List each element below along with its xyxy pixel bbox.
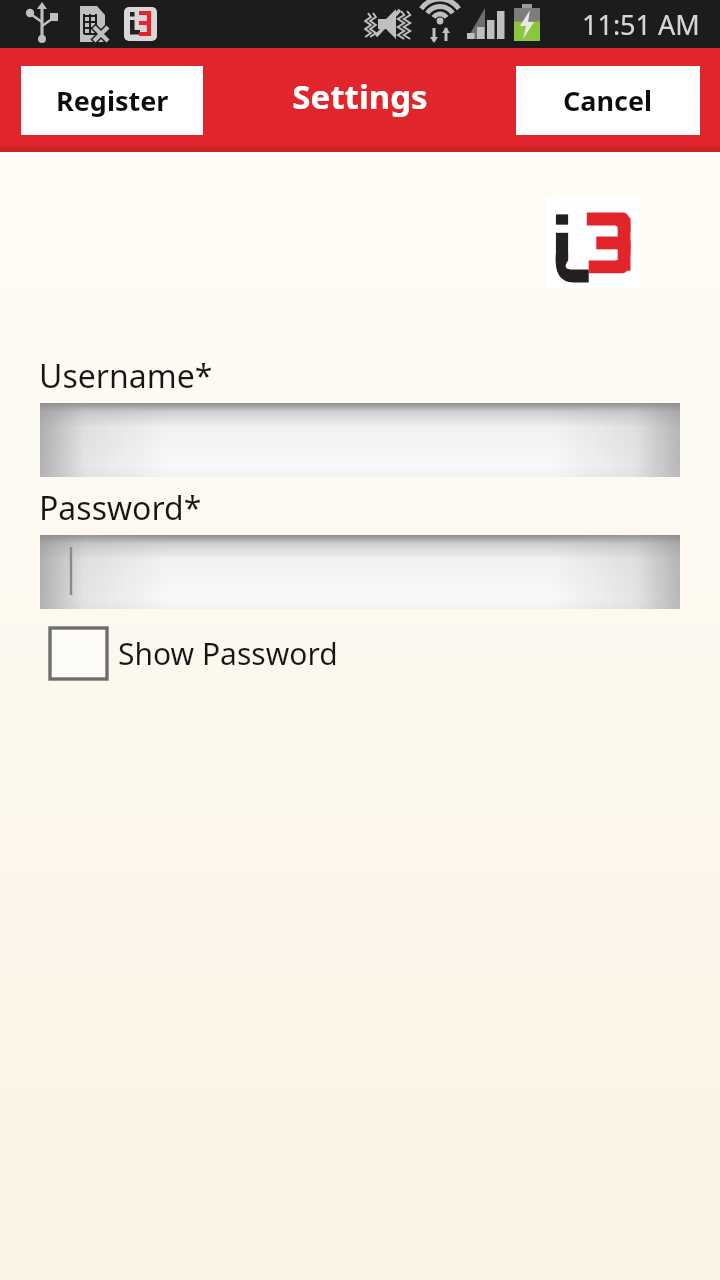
staticText: Settings (292, 74, 428, 119)
button[interactable]: Show Password (50, 625, 338, 681)
button[interactable] (40, 403, 680, 477)
staticText: Show Password (118, 633, 338, 674)
staticText: Cancel (563, 82, 653, 119)
button[interactable]: Cancel (516, 66, 700, 135)
button[interactable]: Register (21, 66, 203, 135)
button[interactable] (40, 535, 680, 609)
other: i3 logo (545, 196, 640, 288)
staticText: Register (56, 82, 169, 119)
staticText: Password* (39, 486, 202, 530)
staticText: Username* (39, 354, 213, 398)
staticText: 11:51 AM (582, 6, 700, 43)
